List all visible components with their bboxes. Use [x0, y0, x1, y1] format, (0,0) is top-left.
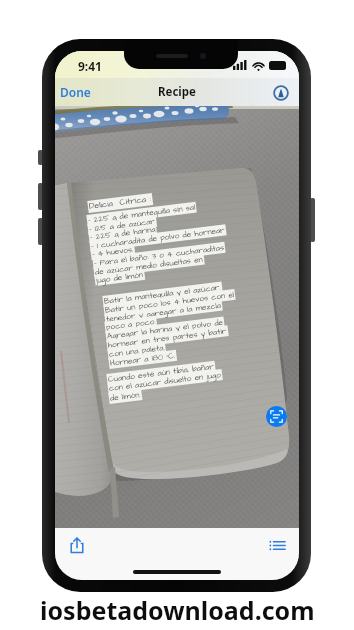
staticText: - 225 g de harina	[89, 224, 156, 243]
staticText: - 125 g de azúcar	[88, 216, 156, 235]
staticText: Hornear a 180 °C.	[109, 350, 176, 369]
staticText: tenedor y agregar a la mezcla	[105, 300, 222, 325]
button[interactable]: Done	[55, 79, 96, 105]
staticText: Cuando esté aún tibia, bañar	[107, 361, 215, 385]
staticText: iosbetadownload.com	[40, 593, 315, 627]
staticText: jugo de limón	[95, 269, 144, 286]
staticText: Agregar la harina y el polvo de	[106, 317, 224, 342]
button[interactable]: Scan text	[266, 406, 287, 427]
staticText: 9:41	[78, 58, 102, 74]
staticText: con el azúcar disuelto en jugo	[108, 369, 222, 394]
staticText: - 225 g de mantequilla sin sal	[87, 202, 196, 226]
staticText: - Para el baño: 3 o 4 cucharaditas	[93, 242, 225, 269]
staticText: Recipe	[158, 84, 196, 100]
button[interactable]: Share	[68, 536, 86, 554]
staticText: Batir un poco los 4 huevos con el	[104, 289, 235, 316]
button[interactable]: Text list	[269, 537, 286, 554]
staticText: hornear en tres partes y batir	[107, 325, 228, 351]
staticText: de limón.	[109, 389, 141, 404]
staticText: con una paleta.	[108, 342, 165, 360]
staticText: Delicia Cítrica :	[88, 193, 152, 213]
staticText: - 4 huevos.	[91, 244, 134, 260]
staticText: poco a poco.	[105, 316, 156, 333]
button[interactable]: Live Text	[271, 83, 290, 102]
staticText: Batir la mantequilla y el azúcar.	[103, 281, 222, 307]
staticText: Done	[60, 84, 91, 100]
staticText: - 1 cucharadita de polvo de hornear	[90, 224, 226, 252]
staticText: de azúcar medio disueltas en	[94, 254, 204, 278]
